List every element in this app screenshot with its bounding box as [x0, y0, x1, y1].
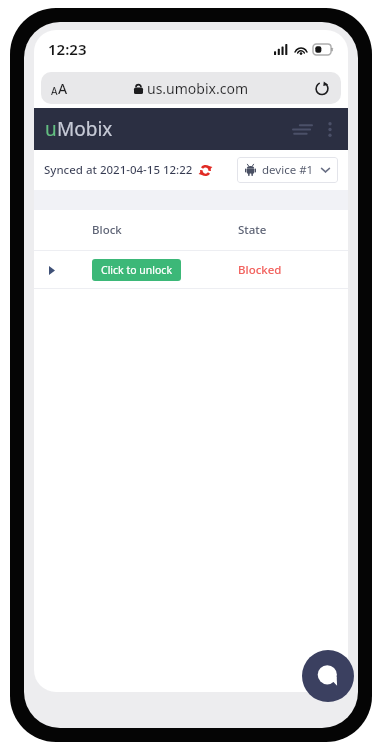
- button[interactable]: device #1: [237, 157, 338, 183]
- staticText: device #1: [262, 162, 314, 178]
- button[interactable]: Menu: [289, 116, 315, 142]
- button[interactable]: Click to unlock: [92, 259, 181, 281]
- button[interactable]: Sync now: [198, 163, 212, 177]
- button[interactable]: Expand row: [44, 262, 60, 278]
- staticText: Blocked: [238, 262, 282, 278]
- button[interactable]: A: [41, 72, 341, 104]
- staticText: A: [51, 84, 58, 98]
- staticText: 12:23: [48, 39, 87, 59]
- staticText: Block: [92, 222, 122, 238]
- button[interactable]: Open chat: [302, 650, 354, 702]
- staticText: Click to unlock: [101, 263, 172, 277]
- button[interactable]: Reload page: [312, 78, 332, 98]
- staticText: u: [45, 116, 57, 142]
- staticText: A: [58, 79, 68, 98]
- staticText: Mobix: [57, 116, 113, 142]
- staticText: Synced at 2021-04-15 12:22: [44, 162, 193, 178]
- staticText: us.umobix.com: [147, 79, 248, 98]
- staticText: State: [238, 222, 267, 238]
- button[interactable]: More options: [321, 116, 339, 142]
